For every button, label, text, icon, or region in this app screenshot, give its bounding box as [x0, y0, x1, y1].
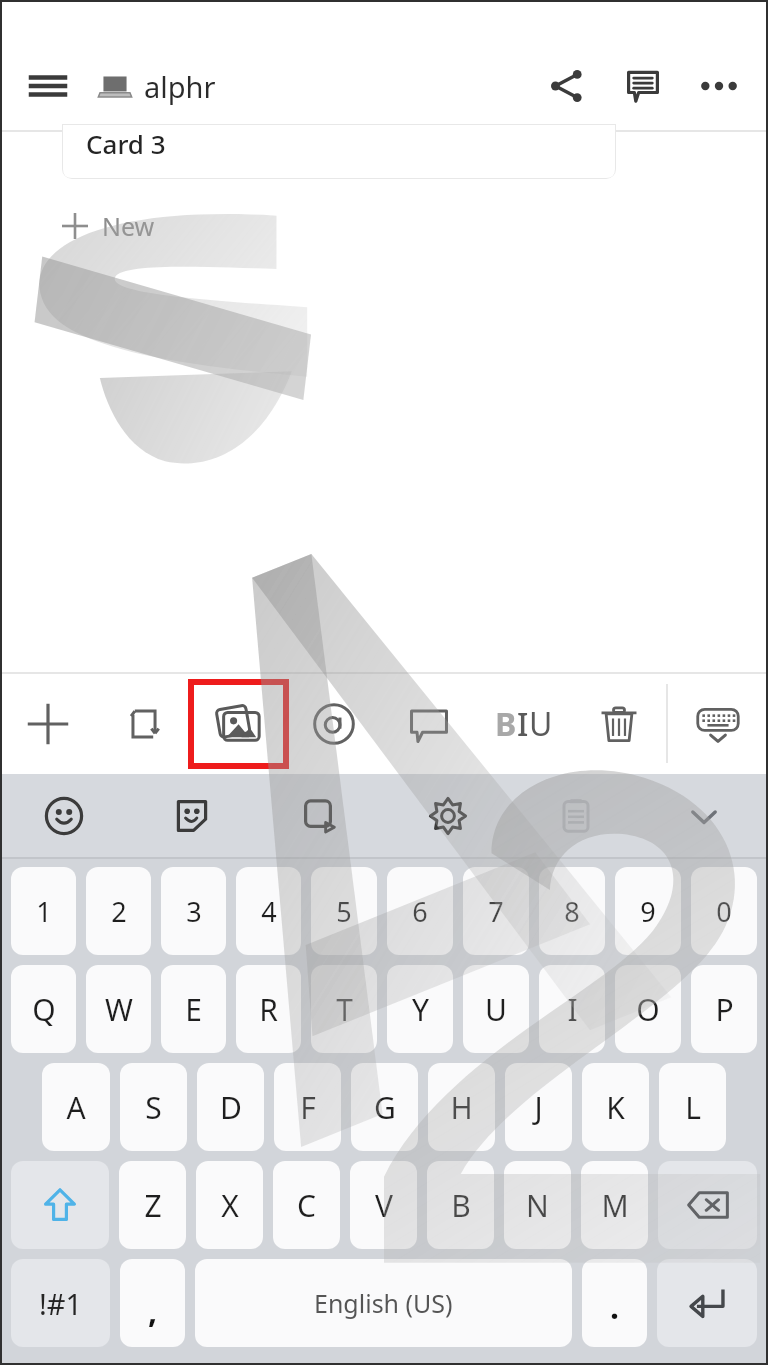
- button[interactable]: O: [615, 965, 681, 1053]
- button[interactable]: 2: [86, 867, 151, 955]
- button[interactable]: R: [236, 965, 301, 1053]
- button[interactable]: English (US): [195, 1259, 572, 1347]
- staticText: 3: [186, 893, 202, 930]
- staticText: A: [66, 1087, 86, 1128]
- staticText: Y: [412, 989, 429, 1030]
- button[interactable]: B: [476, 673, 571, 774]
- staticText: U: [529, 702, 553, 746]
- staticText: 1: [36, 893, 52, 930]
- staticText: 7: [488, 893, 504, 930]
- button[interactable]: 3: [161, 867, 226, 955]
- staticText: T: [336, 989, 353, 1030]
- staticText: O: [636, 989, 660, 1030]
- button[interactable]: Enter: [657, 1259, 757, 1347]
- staticText: B: [495, 702, 517, 746]
- button[interactable]: Comments: [614, 57, 672, 115]
- staticText: !#1: [39, 1284, 83, 1323]
- button[interactable]: Hide keyboard: [668, 673, 768, 774]
- button[interactable]: !#1: [11, 1259, 110, 1347]
- button[interactable]: New: [62, 204, 155, 248]
- button[interactable]: Backspace: [658, 1161, 757, 1249]
- staticText: English (US): [314, 1286, 453, 1320]
- button[interactable]: Delete: [571, 673, 666, 774]
- staticText: W: [105, 989, 133, 1030]
- button[interactable]: Stickers: [128, 774, 256, 858]
- button[interactable]: A: [42, 1063, 110, 1151]
- staticText: 9: [640, 893, 656, 930]
- button[interactable]: Settings: [384, 774, 512, 858]
- staticText: L: [685, 1087, 701, 1128]
- staticText: 2: [111, 893, 127, 930]
- button[interactable]: More options: [690, 57, 748, 115]
- button[interactable]: 5: [311, 867, 377, 955]
- staticText: Q: [32, 989, 56, 1030]
- button[interactable]: Comment: [381, 673, 476, 774]
- button[interactable]: X: [196, 1161, 263, 1249]
- staticText: Z: [144, 1185, 162, 1226]
- staticText: X: [221, 1185, 239, 1226]
- button[interactable]: Menu: [20, 58, 76, 114]
- staticText: P: [715, 989, 734, 1030]
- button[interactable]: Share: [538, 57, 596, 115]
- staticText: R: [259, 989, 278, 1030]
- button[interactable]: Insert image: [191, 682, 286, 766]
- button[interactable]: GIF: [256, 774, 384, 858]
- staticText: I: [567, 989, 578, 1030]
- staticText: 8: [564, 893, 580, 930]
- button[interactable]: J: [505, 1063, 572, 1151]
- staticText: H: [450, 1087, 473, 1128]
- button[interactable]: Z: [119, 1161, 186, 1249]
- button[interactable]: H: [428, 1063, 495, 1151]
- button[interactable]: 6: [387, 867, 453, 955]
- staticText: 5: [336, 893, 352, 930]
- button[interactable]: F: [274, 1063, 341, 1151]
- staticText: 6: [412, 893, 428, 930]
- button[interactable]: Y: [387, 965, 453, 1053]
- button[interactable]: N: [504, 1161, 571, 1249]
- button[interactable]: Reorder: [96, 673, 191, 774]
- button[interactable]: 4: [236, 867, 301, 955]
- button[interactable]: L: [659, 1063, 726, 1151]
- button[interactable]: K: [582, 1063, 649, 1151]
- button[interactable]: ,: [120, 1259, 185, 1347]
- button[interactable]: I: [539, 965, 605, 1053]
- button[interactable]: Mention: [286, 673, 381, 774]
- button[interactable]: W: [86, 965, 151, 1053]
- button[interactable]: B: [427, 1161, 494, 1249]
- button[interactable]: E: [161, 965, 226, 1053]
- staticText: New: [102, 209, 155, 243]
- button[interactable]: Card 3: [62, 124, 616, 179]
- staticText: F: [300, 1087, 316, 1128]
- button[interactable]: Clipboard: [512, 774, 640, 858]
- staticText: Card 3: [86, 126, 166, 161]
- staticText: N: [526, 1185, 549, 1226]
- staticText: I: [517, 702, 529, 746]
- staticText: alphr: [144, 67, 216, 106]
- button[interactable]: Emoji: [0, 774, 128, 858]
- button[interactable]: 7: [463, 867, 529, 955]
- staticText: S: [145, 1087, 162, 1128]
- staticText: M: [601, 1185, 629, 1226]
- button[interactable]: .: [582, 1259, 647, 1347]
- button[interactable]: 1: [11, 867, 76, 955]
- button[interactable]: D: [197, 1063, 264, 1151]
- button[interactable]: T: [311, 965, 377, 1053]
- button[interactable]: P: [691, 965, 757, 1053]
- button[interactable]: U: [463, 965, 529, 1053]
- button[interactable]: 9: [615, 867, 681, 955]
- staticText: K: [606, 1087, 625, 1128]
- button[interactable]: V: [350, 1161, 417, 1249]
- button[interactable]: 8: [539, 867, 605, 955]
- button[interactable]: C: [273, 1161, 340, 1249]
- staticText: 0: [716, 893, 732, 930]
- button[interactable]: Shift: [11, 1161, 109, 1249]
- button[interactable]: Collapse: [640, 774, 768, 858]
- button[interactable]: M: [581, 1161, 648, 1249]
- staticText: ,: [148, 1289, 158, 1333]
- button[interactable]: Q: [11, 965, 76, 1053]
- button[interactable]: S: [120, 1063, 187, 1151]
- button[interactable]: G: [351, 1063, 418, 1151]
- button[interactable]: Add: [0, 673, 96, 774]
- staticText: D: [220, 1087, 242, 1128]
- button[interactable]: 0: [691, 867, 757, 955]
